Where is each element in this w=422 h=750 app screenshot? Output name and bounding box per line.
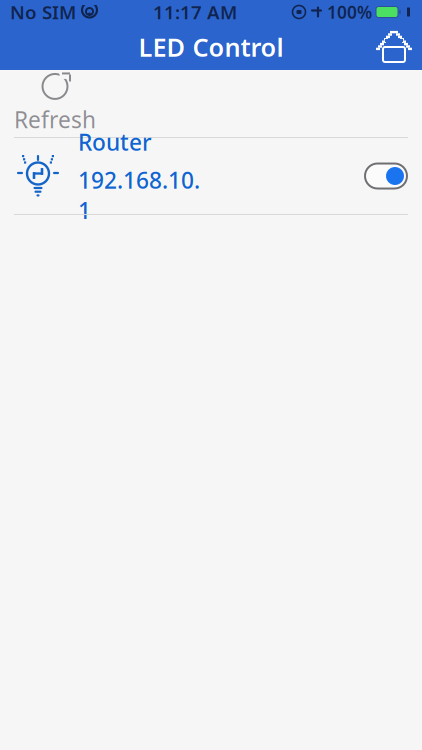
button[interactable]: Home (372, 25, 416, 69)
staticText: 11:17 AM (153, 0, 237, 24)
staticText: No SIM (10, 0, 76, 24)
staticText: Refresh (14, 104, 96, 134)
staticText: 100% (327, 0, 372, 23)
button[interactable]: Router LED toggle, on (364, 162, 408, 189)
button[interactable]: Router (0, 138, 422, 214)
button[interactable]: Refresh (0, 64, 110, 142)
staticText: Router (78, 127, 152, 157)
staticText: LED Control (138, 30, 283, 64)
staticText: 192.168.10.1 (78, 165, 200, 225)
